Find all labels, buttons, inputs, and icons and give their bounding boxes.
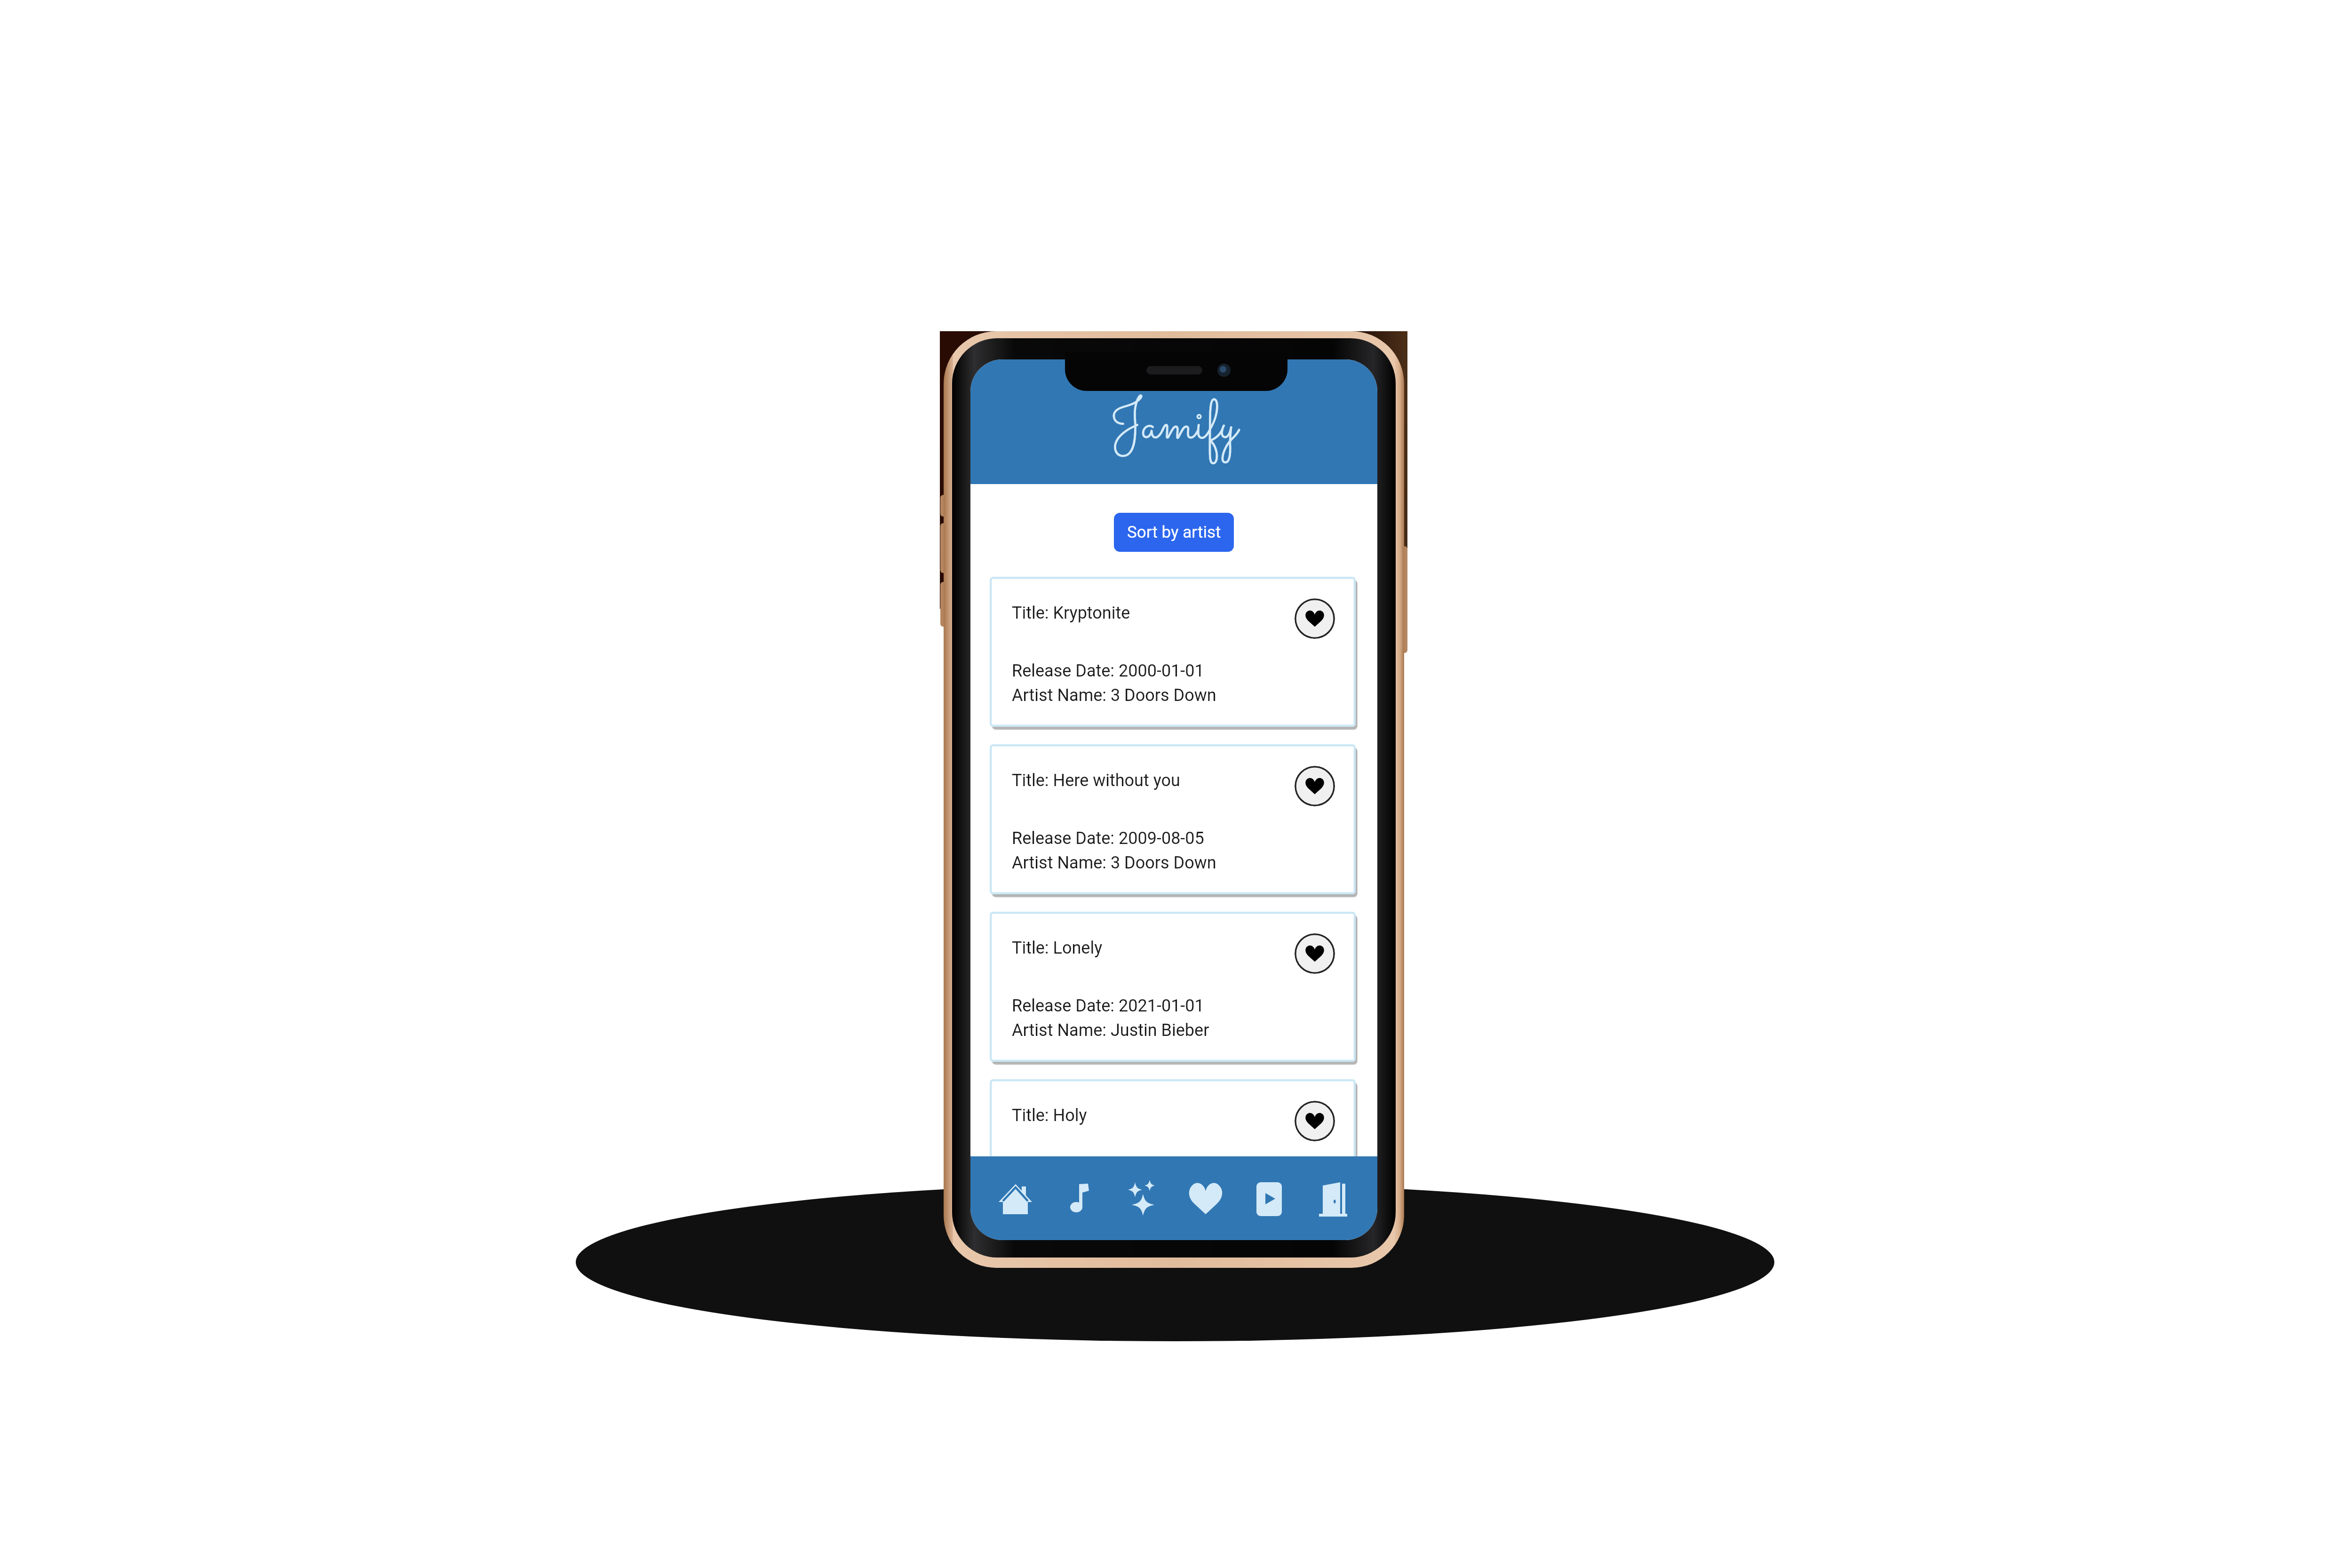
- staticText: Artist Name: Justin Bieber: [1012, 1188, 1209, 1208]
- button[interactable]: Favourites: [1187, 1156, 1224, 1240]
- staticText: Release Date: 2020-09-18: [1012, 1163, 1204, 1183]
- staticText: Sort by artist: [1127, 523, 1221, 542]
- button[interactable]: Title: Kryptonite: [990, 577, 1356, 727]
- staticText: Title: Here without you: [1012, 771, 1180, 790]
- staticText: Artist Name: 3 Doors Down: [1012, 853, 1216, 873]
- button[interactable]: Favourite: [1295, 598, 1335, 639]
- staticText: Release Date: 2009-08-05: [1012, 828, 1204, 848]
- staticText: Title: Kryptonite: [1012, 603, 1130, 623]
- staticText: Release Date: 2021-01-01: [1012, 996, 1204, 1016]
- button[interactable]: Title: Here without you: [990, 744, 1356, 894]
- staticText: Jamify: [1110, 386, 1237, 467]
- button[interactable]: Favourite: [1295, 1101, 1335, 1141]
- staticText: Artist Name: 3 Doors Down: [1012, 685, 1216, 705]
- button[interactable]: Home: [996, 1156, 1034, 1240]
- button[interactable]: Logout: [1314, 1156, 1351, 1240]
- button[interactable]: Title: Lonely: [990, 912, 1356, 1062]
- staticText: Title: Lonely: [1012, 938, 1103, 958]
- staticText: Artist Name: Justin Bieber: [1012, 1020, 1209, 1040]
- staticText: Title: Holy: [1012, 1106, 1087, 1125]
- button[interactable]: Sort by artist: [1114, 513, 1234, 552]
- button[interactable]: Discover: [1123, 1156, 1161, 1240]
- button[interactable]: Favourite: [1295, 766, 1335, 806]
- staticText: Release Date: 2000-01-01: [1012, 661, 1204, 681]
- button[interactable]: Music: [1060, 1156, 1097, 1240]
- button[interactable]: Title: Holy: [990, 1079, 1356, 1229]
- button[interactable]: Videos: [1250, 1156, 1288, 1240]
- button[interactable]: Favourite: [1295, 933, 1335, 974]
